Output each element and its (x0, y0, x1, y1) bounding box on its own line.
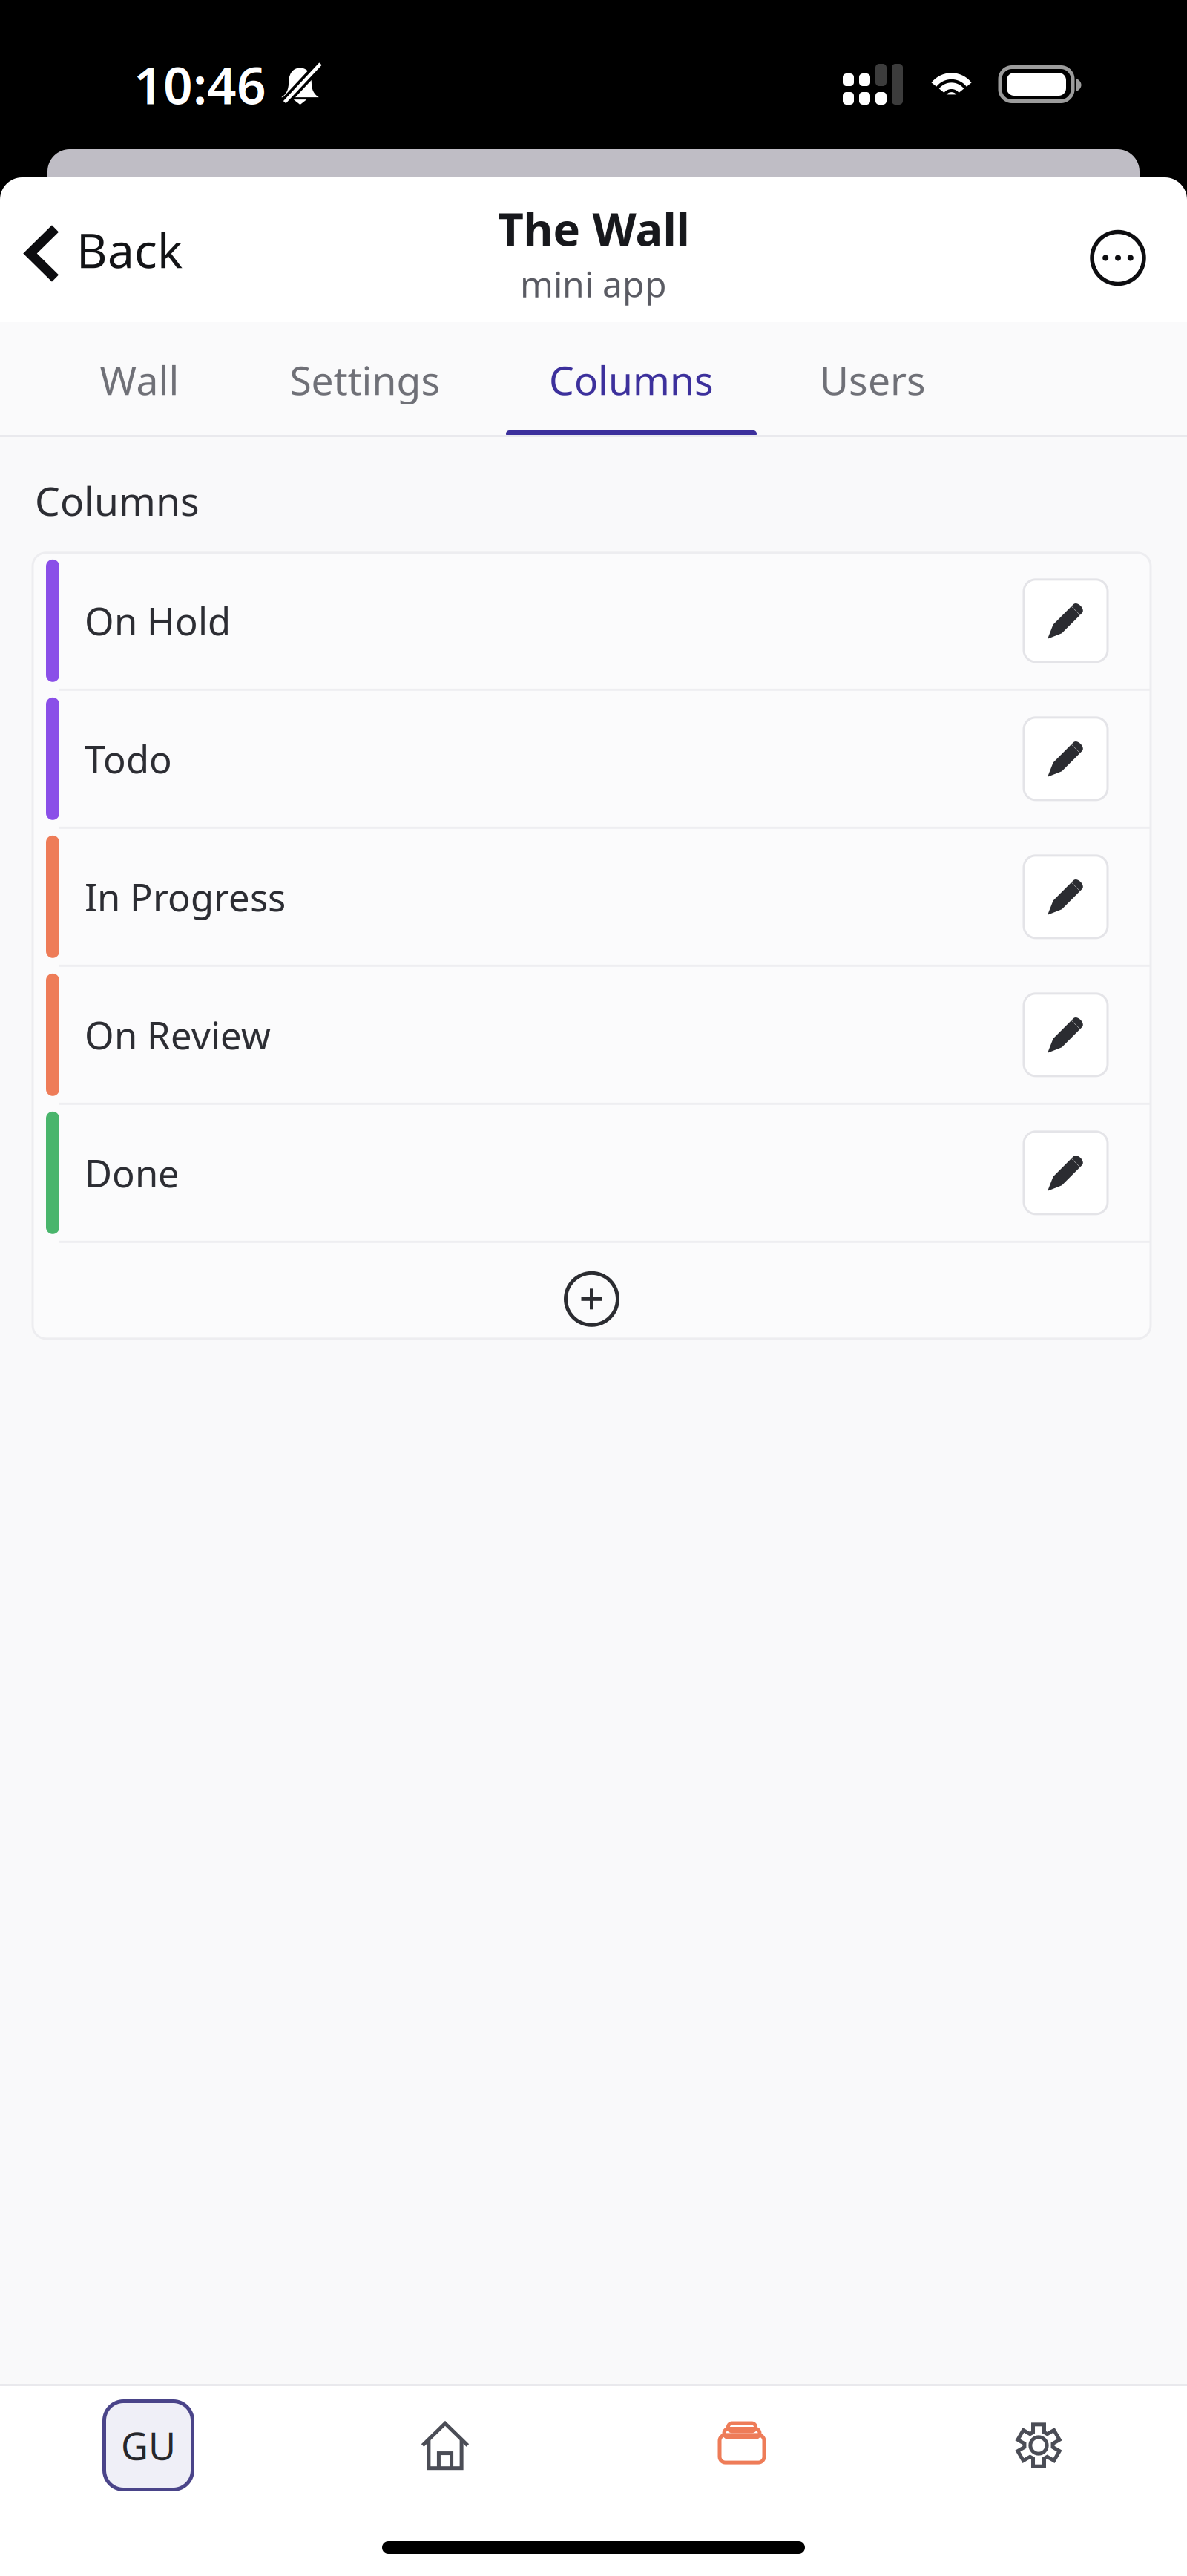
staticText: 10:46 (134, 50, 266, 118)
button[interactable]: Done (33, 1105, 1151, 1241)
staticText: Columns (549, 353, 714, 406)
staticText: The Wall (497, 198, 690, 258)
button[interactable]: Columns (506, 322, 757, 437)
button[interactable]: In Progress (33, 829, 1151, 965)
staticText: Wall (100, 353, 179, 406)
staticText: On Hold (85, 596, 231, 646)
button[interactable]: Todo (33, 691, 1151, 827)
staticText: Done (85, 1148, 180, 1198)
button[interactable]: Users (774, 322, 972, 437)
button[interactable]: Edit In Progress (1024, 856, 1108, 938)
button[interactable]: Settings (241, 322, 489, 437)
button[interactable]: Settings (890, 2386, 1187, 2505)
button[interactable]: More options (1062, 177, 1187, 322)
staticText: Todo (85, 734, 172, 784)
staticText: Columns (35, 474, 200, 527)
button[interactable]: On Review (33, 967, 1151, 1103)
button[interactable]: Add column (33, 1243, 1151, 1339)
button[interactable]: Edit Done (1024, 1132, 1108, 1214)
button[interactable]: Boards (593, 2386, 890, 2505)
button[interactable]: Back (0, 177, 209, 322)
button[interactable]: Edit On Review (1024, 994, 1108, 1076)
button[interactable]: Account GU (0, 2386, 297, 2505)
staticText: mini app (520, 260, 667, 307)
staticText: Back (76, 218, 183, 281)
staticText: Users (820, 353, 926, 406)
staticText: In Progress (85, 872, 286, 922)
staticText: GU (121, 2420, 176, 2470)
button[interactable]: Wall (55, 322, 224, 437)
button[interactable]: Edit Todo (1024, 718, 1108, 800)
staticText: On Review (85, 1010, 271, 1060)
button[interactable]: On Hold (33, 553, 1151, 689)
button[interactable]: Edit On Hold (1024, 579, 1108, 662)
staticText: Settings (290, 353, 440, 406)
button[interactable]: Home (297, 2386, 593, 2505)
